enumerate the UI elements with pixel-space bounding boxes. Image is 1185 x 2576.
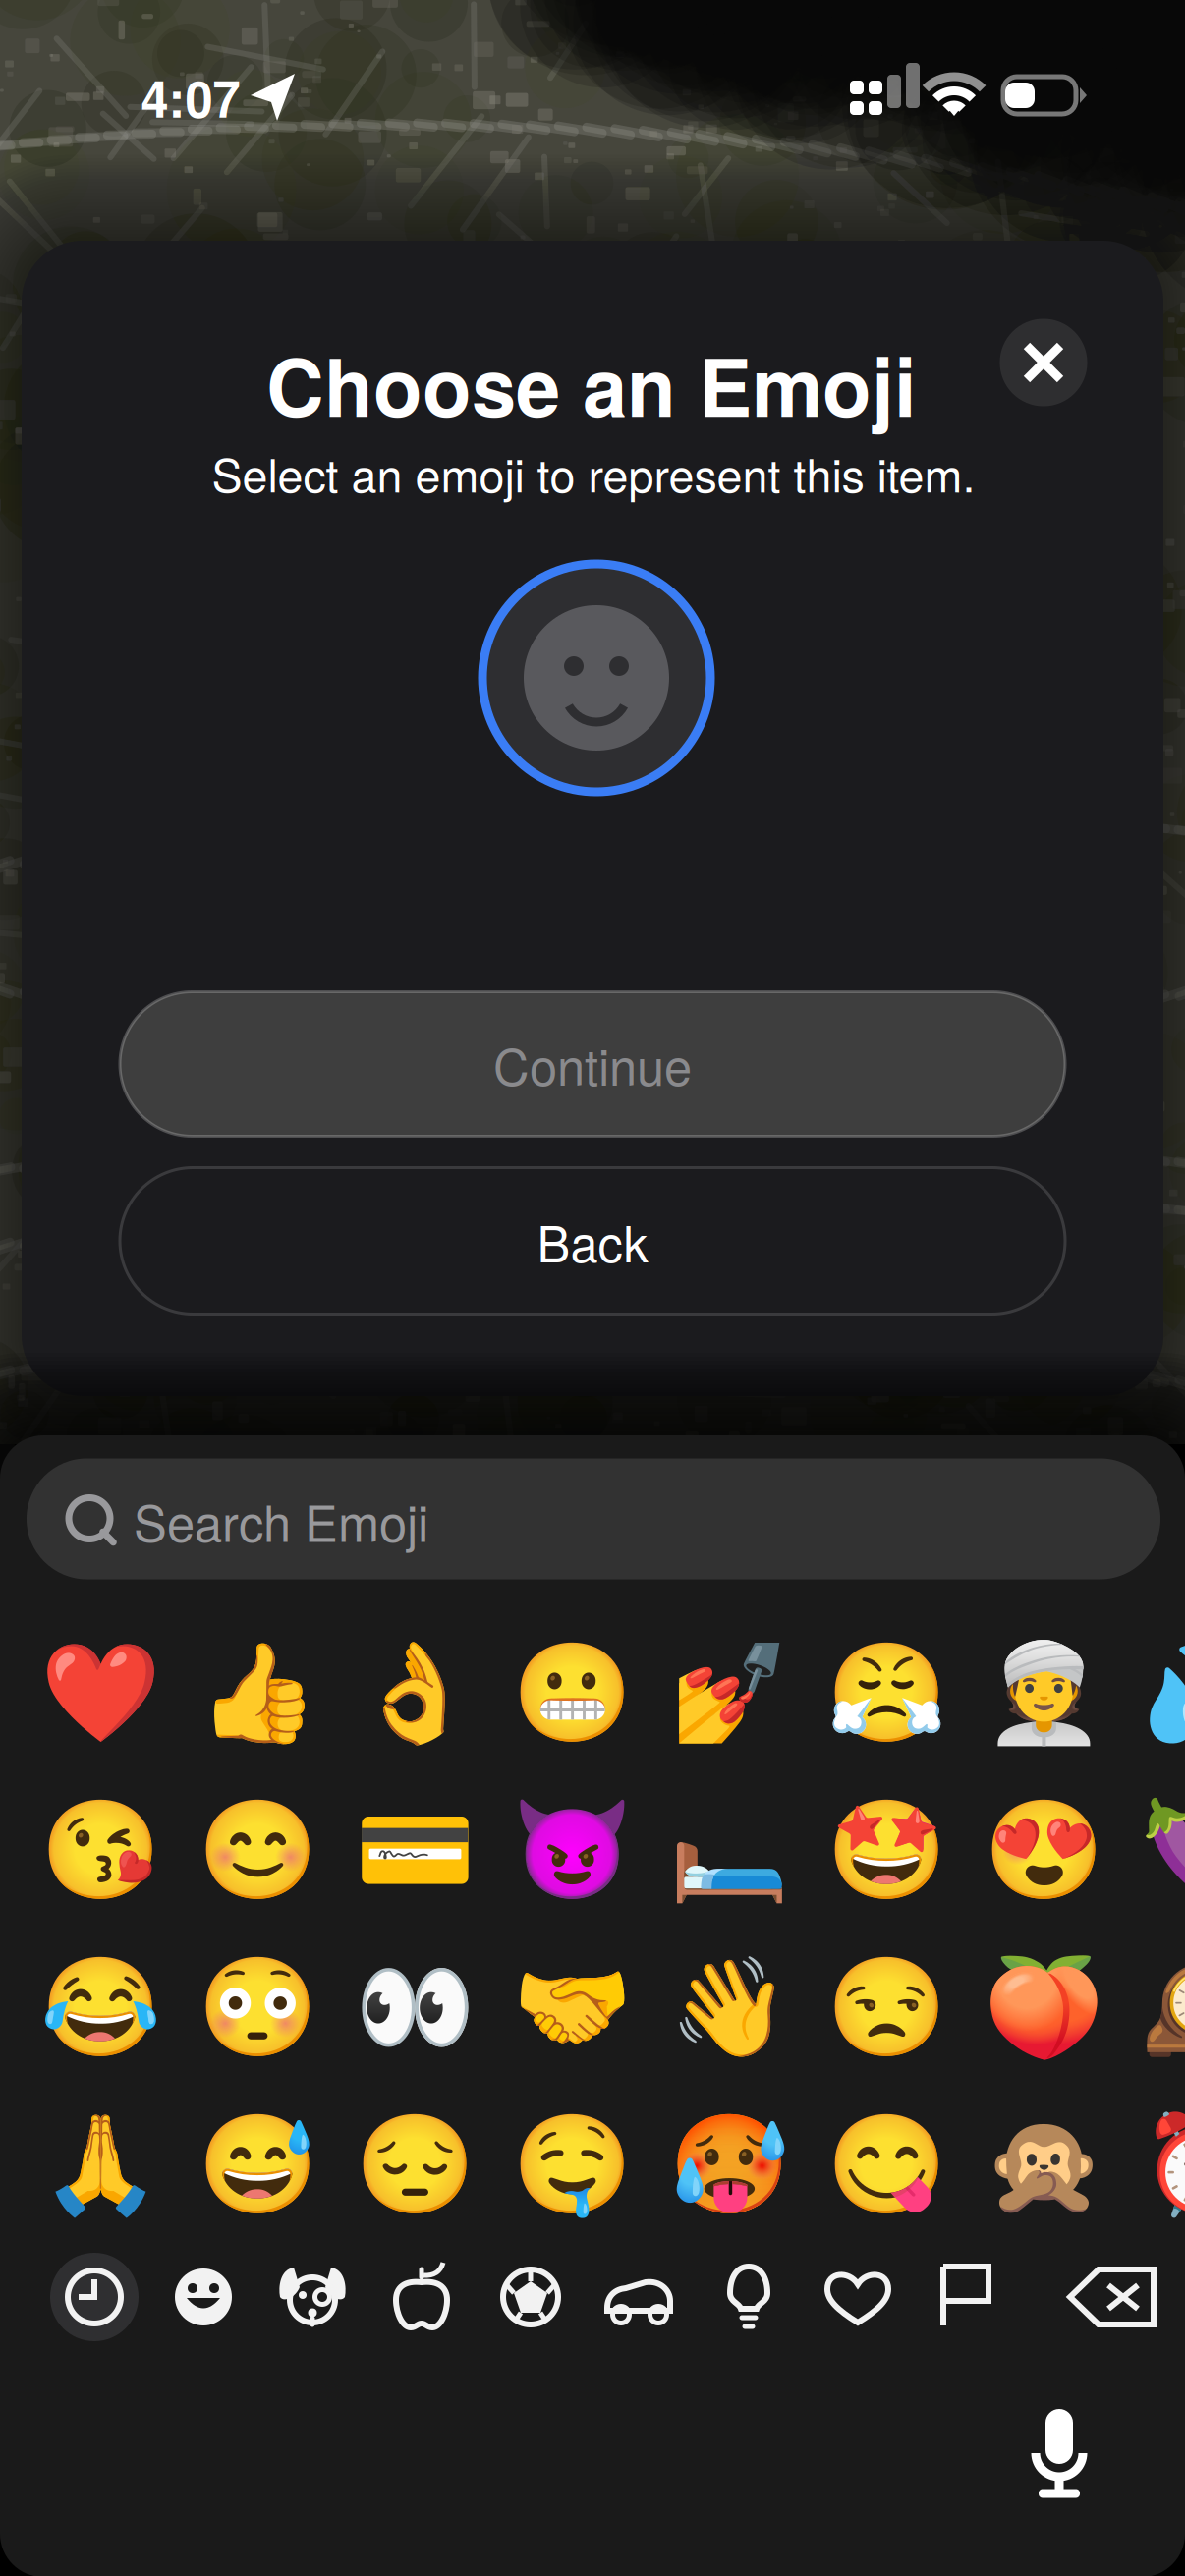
button[interactable]: Face with steam from nose (827, 1634, 945, 1752)
button[interactable]: Face blowing a kiss (41, 1791, 159, 1909)
staticText: 😈 (511, 1793, 632, 1907)
button[interactable]: Face with hand over mouth (513, 2105, 631, 2223)
button[interactable]: Activity (485, 2252, 576, 2342)
staticText: 😘 (40, 1793, 161, 1907)
staticText: 🙊 (983, 2108, 1104, 2221)
button[interactable]: Animals & Nature (267, 2252, 358, 2342)
button[interactable]: Thumbs up (198, 1634, 316, 1752)
button[interactable]: Folded hands (41, 2105, 159, 2223)
button[interactable]: Flags (922, 2252, 1012, 2342)
staticText: 🙏 (40, 2108, 161, 2221)
button[interactable]: Person wearing turban (985, 1634, 1102, 1752)
button[interactable]: Food & Drink (376, 2252, 467, 2342)
button[interactable]: Grimacing face (513, 1634, 631, 1752)
staticText: 👋 (669, 1950, 790, 2064)
button[interactable]: Smiling face with horns (513, 1791, 631, 1909)
staticText: Continue (493, 1028, 692, 1100)
button[interactable]: Star-struck (827, 1791, 945, 1909)
staticText: ⏰ (1140, 2108, 1185, 2221)
staticText: 🕰️ (1140, 1950, 1185, 2064)
staticText: 😋 (826, 2108, 947, 2221)
button[interactable]: Smiling face with smiling eyes (198, 1791, 316, 1909)
button[interactable]: Face savoring food (827, 2105, 945, 2223)
button[interactable]: Face with tears of joy (41, 1948, 159, 2066)
button[interactable]: Peach (985, 1948, 1102, 2066)
button[interactable]: Delete (1063, 2263, 1161, 2331)
button[interactable]: Grinning face with sweat (198, 2105, 316, 2223)
button[interactable]: Unamused face (827, 1948, 945, 2066)
button[interactable]: Travel & Places (594, 2252, 685, 2342)
staticText: 😊 (197, 1793, 318, 1907)
staticText: 😤 (826, 1636, 947, 1750)
button[interactable]: Handshake (513, 1948, 631, 2066)
button[interactable]: Flushed face (198, 1948, 316, 2066)
button[interactable]: Smiling face with heart-eyes (985, 1791, 1102, 1909)
staticText: 🤤 (511, 2108, 632, 2221)
staticText: 😳 (197, 1950, 318, 2064)
button[interactable]: Dictate (1017, 2401, 1101, 2499)
staticText: 🤩 (826, 1793, 947, 1907)
staticText: 🤝 (511, 1950, 632, 2064)
staticText: 👀 (354, 1950, 475, 2064)
staticText: 👳 (983, 1636, 1104, 1750)
button[interactable]: Back (120, 1168, 1065, 1314)
button[interactable]: Credit card (356, 1791, 474, 1909)
button[interactable]: Pensive face (356, 2105, 474, 2223)
staticText: 😍 (983, 1793, 1104, 1907)
button[interactable]: Hot face (670, 2105, 788, 2223)
button[interactable]: Bed (670, 1791, 788, 1909)
button[interactable]: Waving hand (670, 1948, 788, 2066)
button[interactable]: Eggplant (1142, 1791, 1185, 1909)
button[interactable]: Eyes (356, 1948, 474, 2066)
staticText: 😂 (40, 1950, 161, 2064)
staticText: 🍆 (1140, 1793, 1185, 1907)
button[interactable]: Search Emoji (27, 1458, 1160, 1579)
staticText: 😒 (826, 1950, 947, 2064)
button[interactable]: Mantelpiece clock (1142, 1948, 1185, 2066)
staticText: 👍 (197, 1636, 318, 1750)
button[interactable]: Continue (120, 992, 1065, 1136)
button[interactable]: Symbols (813, 2252, 903, 2342)
button[interactable]: OK hand (356, 1634, 474, 1752)
staticText: 👌 (354, 1636, 475, 1750)
button[interactable]: Smileys & People (158, 2252, 249, 2342)
staticText: Search Emoji (134, 1485, 428, 1556)
staticText: Back (537, 1205, 648, 1277)
button[interactable]: Red heart (41, 1634, 159, 1752)
button[interactable]: Sweat droplets (1142, 1634, 1185, 1752)
staticText: 🥵 (669, 2108, 790, 2221)
button[interactable]: Recently used (49, 2252, 140, 2342)
staticText: 😔 (354, 2108, 475, 2221)
staticText: Choose an Emoji (266, 327, 917, 441)
button[interactable]: Alarm clock (1142, 2105, 1185, 2223)
staticText: 💦 (1140, 1636, 1185, 1750)
staticText: 😅 (197, 2108, 318, 2221)
button[interactable]: Speak-no-evil monkey (985, 2105, 1102, 2223)
staticText: 💳 (354, 1793, 475, 1907)
staticText: 🛏️ (669, 1793, 790, 1907)
staticText: 🍑 (983, 1950, 1104, 2064)
staticText: ❤️ (40, 1636, 161, 1750)
button[interactable]: Close (1000, 319, 1087, 406)
button[interactable]: Nail polish (670, 1634, 788, 1752)
staticText: Select an emoji to represent this item. (212, 440, 975, 505)
staticText: 😬 (511, 1636, 632, 1750)
staticText: 💅 (669, 1636, 790, 1750)
button[interactable]: Objects (704, 2252, 794, 2342)
staticText: 4:07 (141, 62, 240, 133)
